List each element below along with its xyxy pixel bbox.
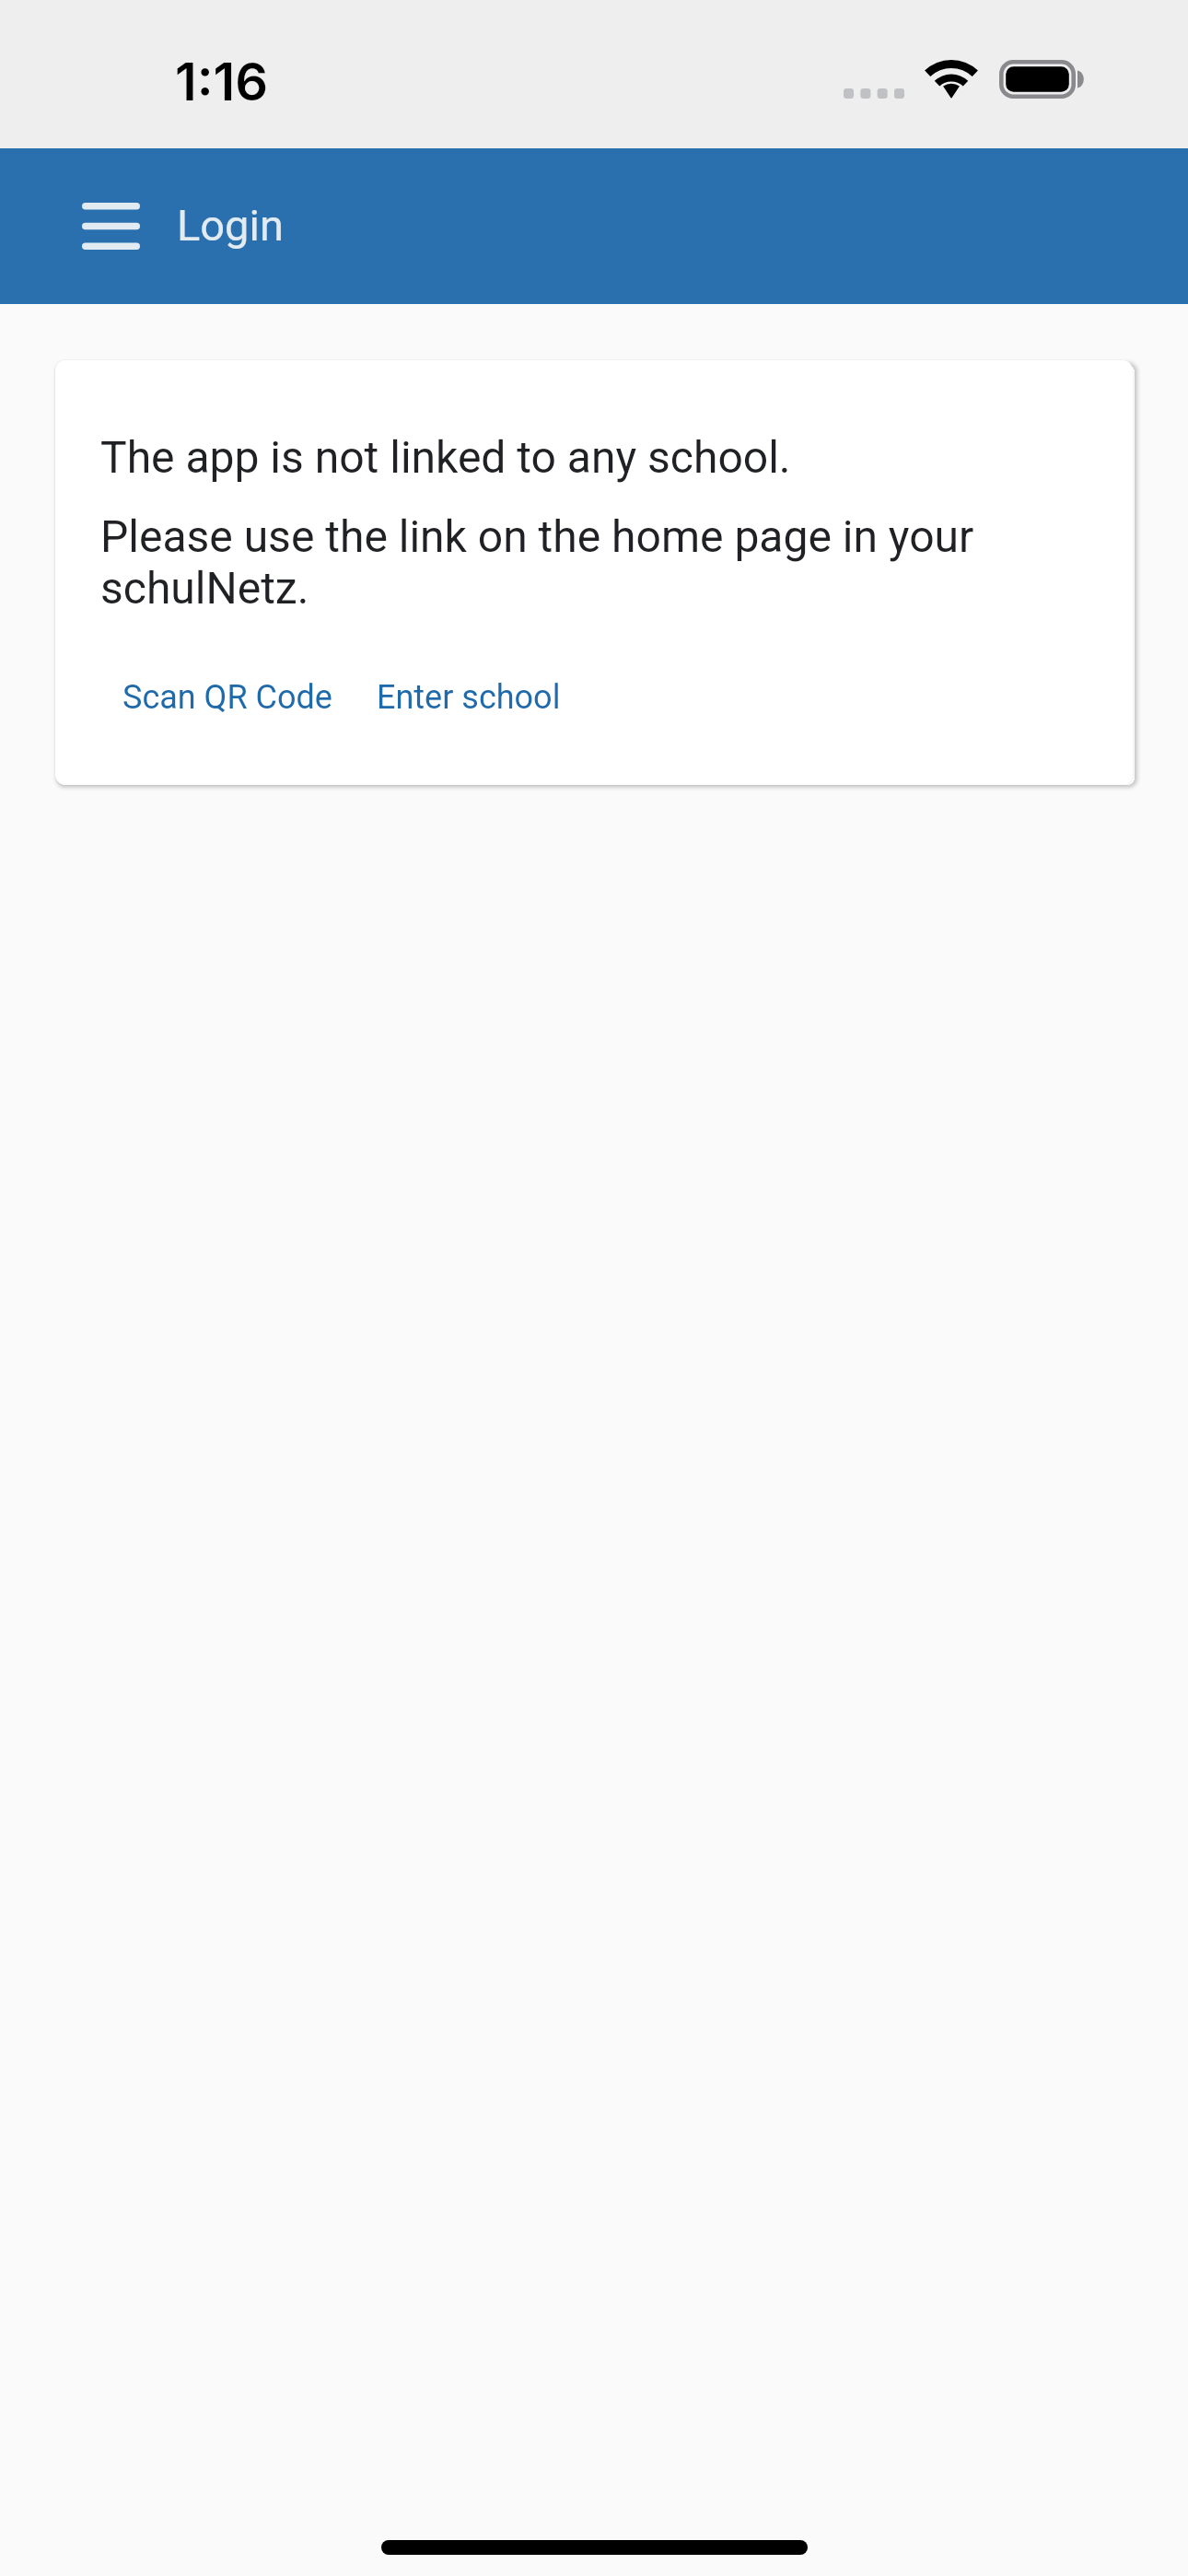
staticText: Login (177, 200, 284, 251)
staticText: Scan QR Code (122, 678, 332, 717)
button[interactable]: Enter school (355, 660, 583, 735)
staticText: Please use the link on the home page in … (100, 510, 1088, 614)
button[interactable]: Open navigation menu (44, 159, 177, 292)
staticText: Enter school (377, 678, 561, 717)
staticText: The app is not linked to any school. (100, 431, 791, 483)
staticText: 1:16 (175, 51, 269, 113)
button[interactable]: Scan QR Code (100, 660, 355, 735)
